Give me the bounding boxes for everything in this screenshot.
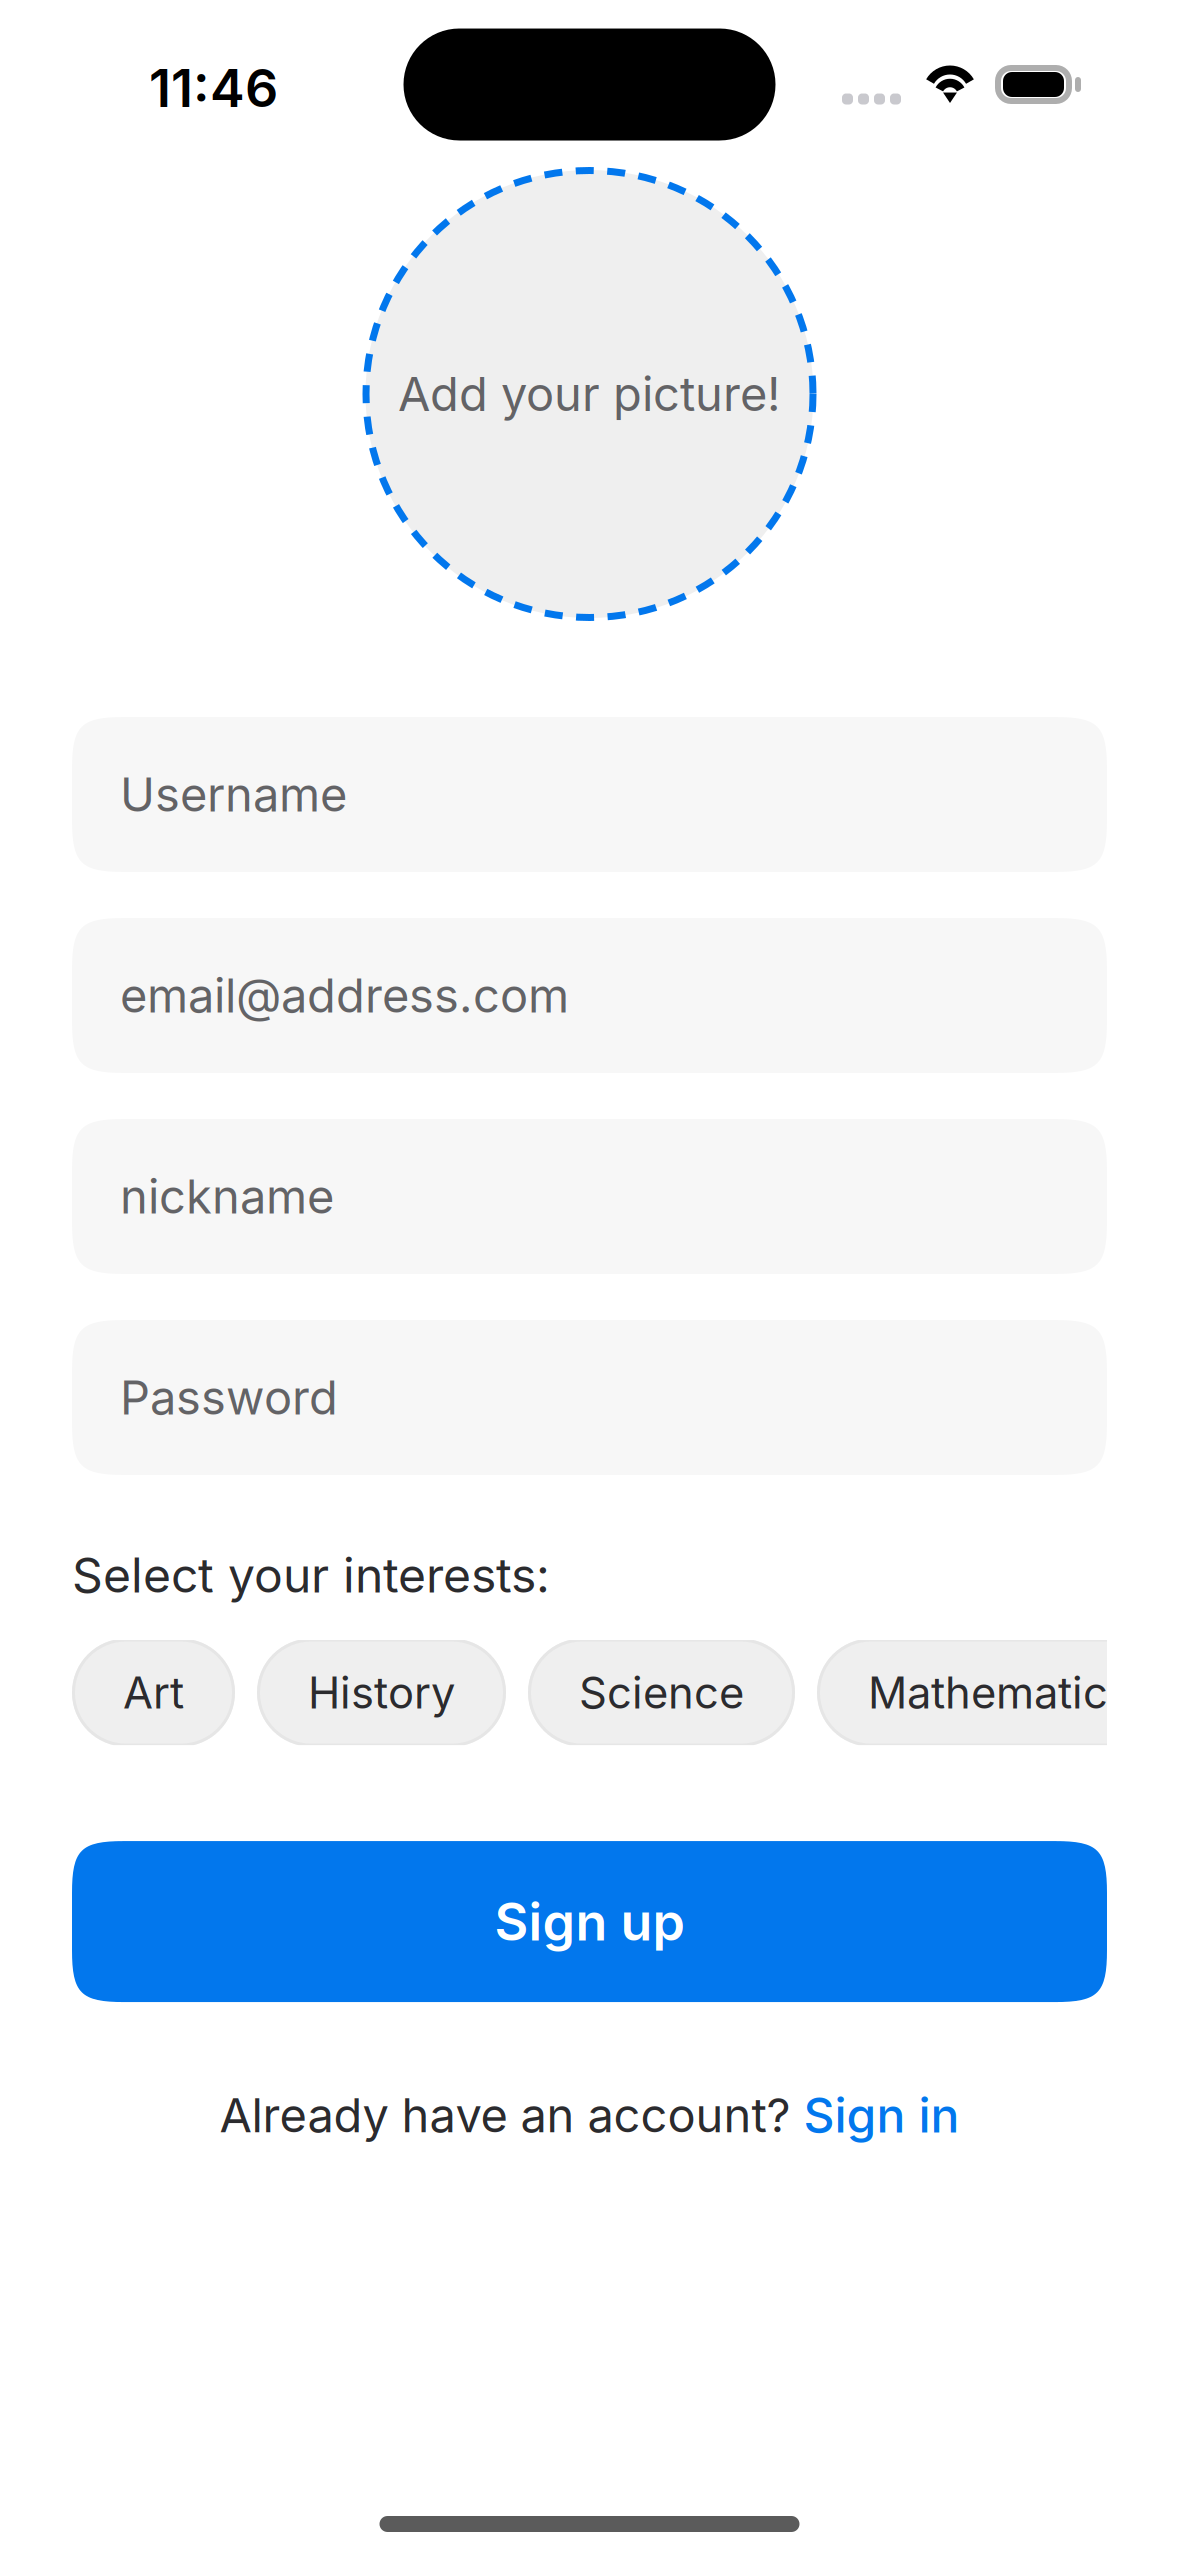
staticText: email@address.com [120, 967, 569, 1024]
staticText: Password [120, 1369, 338, 1426]
button[interactable]: nickname [72, 1119, 1107, 1274]
button[interactable]: Art [72, 1639, 235, 1747]
staticText: 11:46 [149, 56, 278, 119]
staticText: History [308, 1666, 455, 1719]
button[interactable]: email@address.com [72, 918, 1107, 1073]
button[interactable]: History [257, 1639, 506, 1747]
button[interactable]: Science [528, 1639, 795, 1747]
staticText: Sign in [803, 2086, 959, 2144]
button[interactable]: Sign up [72, 1841, 1107, 2002]
staticText: Science [579, 1666, 744, 1719]
staticText: Sign up [494, 1890, 684, 1953]
button[interactable]: Add your picture [361, 166, 817, 622]
staticText: Username [120, 766, 347, 823]
staticText: Already have an account? [219, 2087, 790, 2144]
staticText: Art [123, 1666, 184, 1719]
staticText: nickname [120, 1168, 334, 1225]
staticText: Select your interests: [72, 1546, 550, 1604]
staticText: Mathematics [868, 1666, 1131, 1719]
button[interactable]: Mathematics [817, 1639, 1179, 1747]
button[interactable]: Password [72, 1320, 1107, 1475]
button[interactable]: Username [72, 717, 1107, 872]
button[interactable]: Sign in [803, 2086, 959, 2144]
staticText: Add your picture! [398, 366, 781, 422]
